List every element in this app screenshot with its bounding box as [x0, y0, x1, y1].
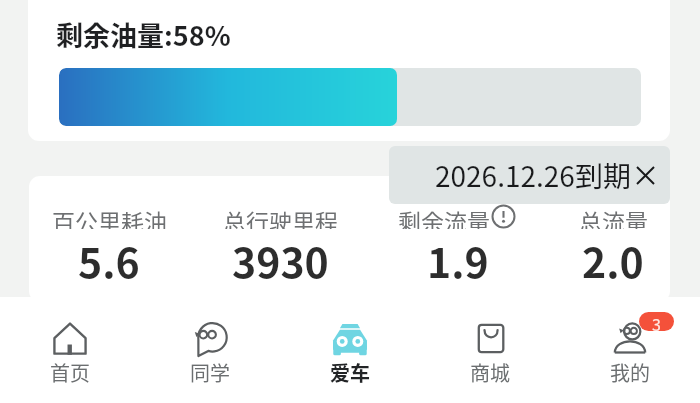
button[interactable]: 剩余油量:58%	[28, 0, 670, 141]
staticText: 3930	[232, 230, 329, 289]
staticText: 商城	[470, 358, 510, 387]
button[interactable]: 总流量	[533, 176, 670, 290]
staticText: 同学	[190, 358, 230, 387]
staticText: 我的	[610, 358, 650, 387]
staticText: 剩余油量:58%	[56, 15, 231, 54]
button[interactable]: 总行驶里程	[200, 176, 360, 290]
staticText: 首页	[50, 358, 90, 387]
staticText: 总行驶里程	[223, 204, 338, 229]
staticText: 5.6	[78, 230, 140, 289]
staticText: 2026.12.26到期	[435, 155, 631, 196]
button[interactable]: 剩余流量	[378, 176, 538, 290]
staticText: 3	[652, 312, 661, 331]
staticText: 爱车	[330, 358, 370, 387]
button[interactable]: 百公里耗油	[29, 176, 189, 290]
button[interactable]: 商城	[420, 297, 560, 387]
staticText: 百公里耗油	[52, 204, 167, 229]
staticText: 1.9	[427, 230, 489, 289]
staticText: 剩余流量	[398, 204, 490, 229]
button[interactable]: 爱车	[280, 297, 420, 387]
button[interactable]: 首页	[0, 297, 140, 387]
button[interactable]: 2026.12.26到期	[389, 146, 670, 204]
staticText: 2.0	[582, 230, 644, 289]
button[interactable]: 同学	[140, 297, 280, 387]
button[interactable]: 我的	[560, 297, 700, 387]
staticText: 总流量	[579, 204, 648, 229]
